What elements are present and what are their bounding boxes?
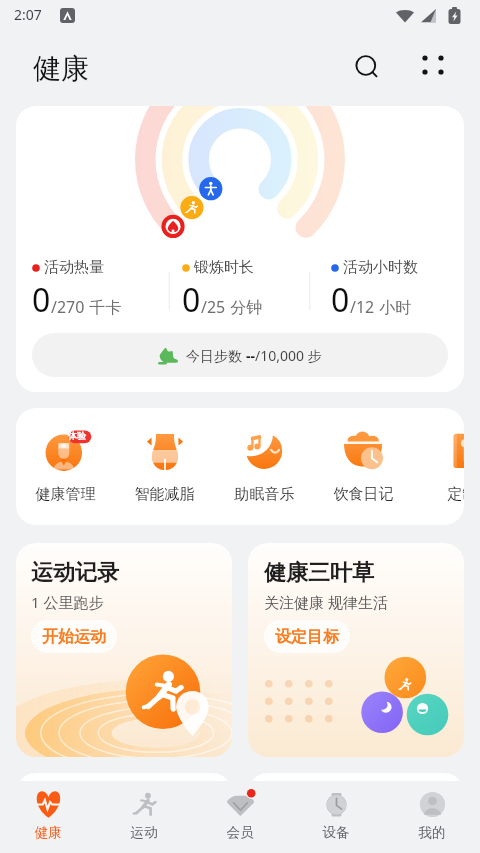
button[interactable]: 健康 — [0, 781, 96, 853]
button[interactable]: 定制 — [413, 408, 464, 525]
staticText: -- — [246, 346, 255, 365]
staticText: 1 公里跑步 — [31, 592, 104, 612]
button[interactable]: More options — [412, 46, 456, 90]
staticText: 关注健康 规律生活 — [264, 592, 388, 612]
staticText: 设定目标 — [275, 627, 339, 647]
staticText: 会员 — [192, 824, 288, 841]
staticText: 千卡 — [85, 296, 122, 318]
staticText: 0 — [182, 278, 201, 322]
staticText: 体验 — [68, 430, 86, 441]
staticText: 活动热量 — [44, 258, 104, 277]
staticText: 健康管理 — [16, 485, 115, 504]
staticText: 今日步数 — [186, 346, 246, 365]
button[interactable]: 今日步数 — [32, 333, 448, 377]
staticText: 0 — [331, 278, 350, 322]
staticText: 0 — [32, 278, 51, 322]
staticText: 我的 — [384, 824, 480, 841]
button[interactable]: 体验 — [16, 408, 115, 525]
staticText: 小时 — [375, 296, 412, 318]
button[interactable]: 智能减脂 — [115, 408, 214, 525]
staticText: 定制 — [413, 485, 464, 504]
staticText: 运动记录 — [31, 559, 119, 587]
staticText: 分钟 — [226, 296, 263, 318]
button[interactable]: 运动 — [96, 781, 192, 853]
staticText: 饮食日记 — [314, 485, 413, 504]
staticText: 锻炼时长 — [194, 258, 254, 277]
staticText: 活动小时数 — [343, 258, 418, 277]
button[interactable]: 我的 — [384, 781, 480, 853]
staticText: 智能减脂 — [115, 485, 214, 504]
staticText: /10,000 步 — [255, 346, 322, 365]
staticText: 2:07 — [14, 5, 42, 24]
staticText: /12 — [350, 296, 375, 318]
staticText: /270 — [51, 296, 85, 318]
button[interactable]: 饮食日记 — [314, 408, 413, 525]
staticText: 运动 — [96, 824, 192, 841]
staticText: 开始运动 — [42, 627, 106, 647]
button[interactable]: 设备 — [288, 781, 384, 853]
staticText: 设备 — [288, 824, 384, 841]
button[interactable]: Search — [344, 46, 388, 90]
button[interactable]: 助眠音乐 — [215, 408, 314, 525]
staticText: 健康三叶草 — [264, 559, 374, 587]
button[interactable]: 健康三叶草 — [248, 543, 464, 757]
staticText: /25 — [201, 296, 226, 318]
button[interactable]: 运动记录 — [16, 543, 232, 757]
staticText: 助眠音乐 — [215, 485, 314, 504]
staticText: 健康 — [33, 51, 89, 86]
staticText: 健康 — [0, 824, 96, 841]
button[interactable]: 会员 — [192, 781, 288, 853]
